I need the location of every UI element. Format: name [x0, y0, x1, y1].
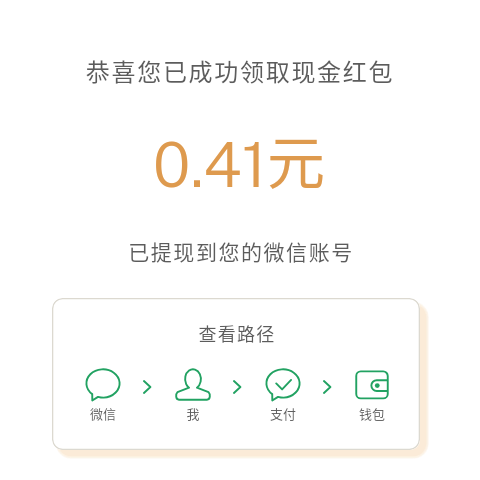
staticText: 已提现到您的微信账号: [1, 236, 480, 266]
other: Next step: [138, 378, 156, 396]
staticText: 元: [267, 117, 326, 201]
staticText: 微信: [79, 404, 127, 423]
staticText: 我: [169, 404, 217, 423]
button[interactable]: Wallet: [348, 365, 396, 421]
button[interactable]: Me: [169, 365, 217, 421]
other: Next step: [228, 378, 246, 396]
staticText: 0.41: [153, 128, 267, 201]
button[interactable]: Pay: [259, 365, 307, 421]
other: Next step: [318, 378, 336, 396]
button[interactable]: WeChat: [79, 365, 127, 421]
staticText: 查看路径: [53, 320, 421, 346]
staticText: 钱包: [348, 404, 396, 423]
staticText: 恭喜您已成功领取现金红包: [0, 53, 480, 88]
staticText: 支付: [259, 404, 307, 423]
button[interactable]: [52, 298, 420, 450]
